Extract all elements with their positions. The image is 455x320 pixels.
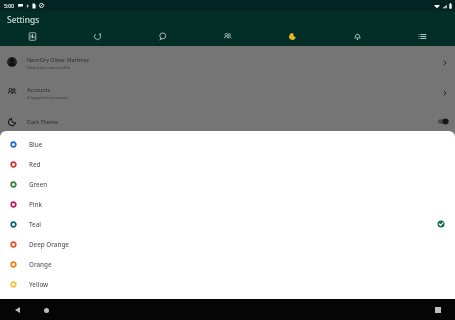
button[interactable]: Blue [0,134,455,154]
button[interactable]: Chat [130,28,195,46]
button[interactable]: Back [10,303,24,317]
button[interactable]: Sync [65,28,130,46]
staticText: View your user profile [27,65,70,71]
staticText: NernOry Oliver Martinez [27,56,90,63]
button[interactable]: NernOry Oliver Martinez [0,46,455,76]
staticText: Yellow [29,280,49,289]
staticText: Green [29,180,48,189]
button[interactable]: Yellow [0,274,455,294]
button[interactable]: Home [39,303,53,317]
staticText: Red [29,160,41,169]
staticText: Blue [29,140,43,149]
button[interactable]: Deep Orange [0,234,455,254]
button[interactable]: Theme [260,28,325,46]
staticText: 5:00 [4,2,15,9]
staticText: Pink [29,200,43,209]
button[interactable]: Dashboard [0,28,65,46]
button[interactable]: Accounts [0,76,455,106]
staticText: Deep Orange [29,240,69,249]
button[interactable]: Dark Theme [0,106,455,136]
button[interactable]: Pink [0,194,455,214]
staticText: Accounts [27,86,51,93]
button[interactable]: Green [0,174,455,194]
button[interactable]: Orange [0,254,455,274]
staticText: Dark Theme [27,118,58,125]
staticText: Settings [7,14,40,26]
button[interactable]: People [195,28,260,46]
button[interactable]: Dark theme toggle [438,117,449,126]
staticText: Teal [29,220,42,229]
staticText: Orange [29,260,52,269]
button[interactable]: Recents [431,303,445,317]
button[interactable]: More [390,28,455,46]
button[interactable]: Alerts [325,28,390,46]
button[interactable]: Red [0,154,455,174]
staticText: 4 logged in accounts. [27,95,69,101]
button[interactable]: Teal [0,214,455,234]
